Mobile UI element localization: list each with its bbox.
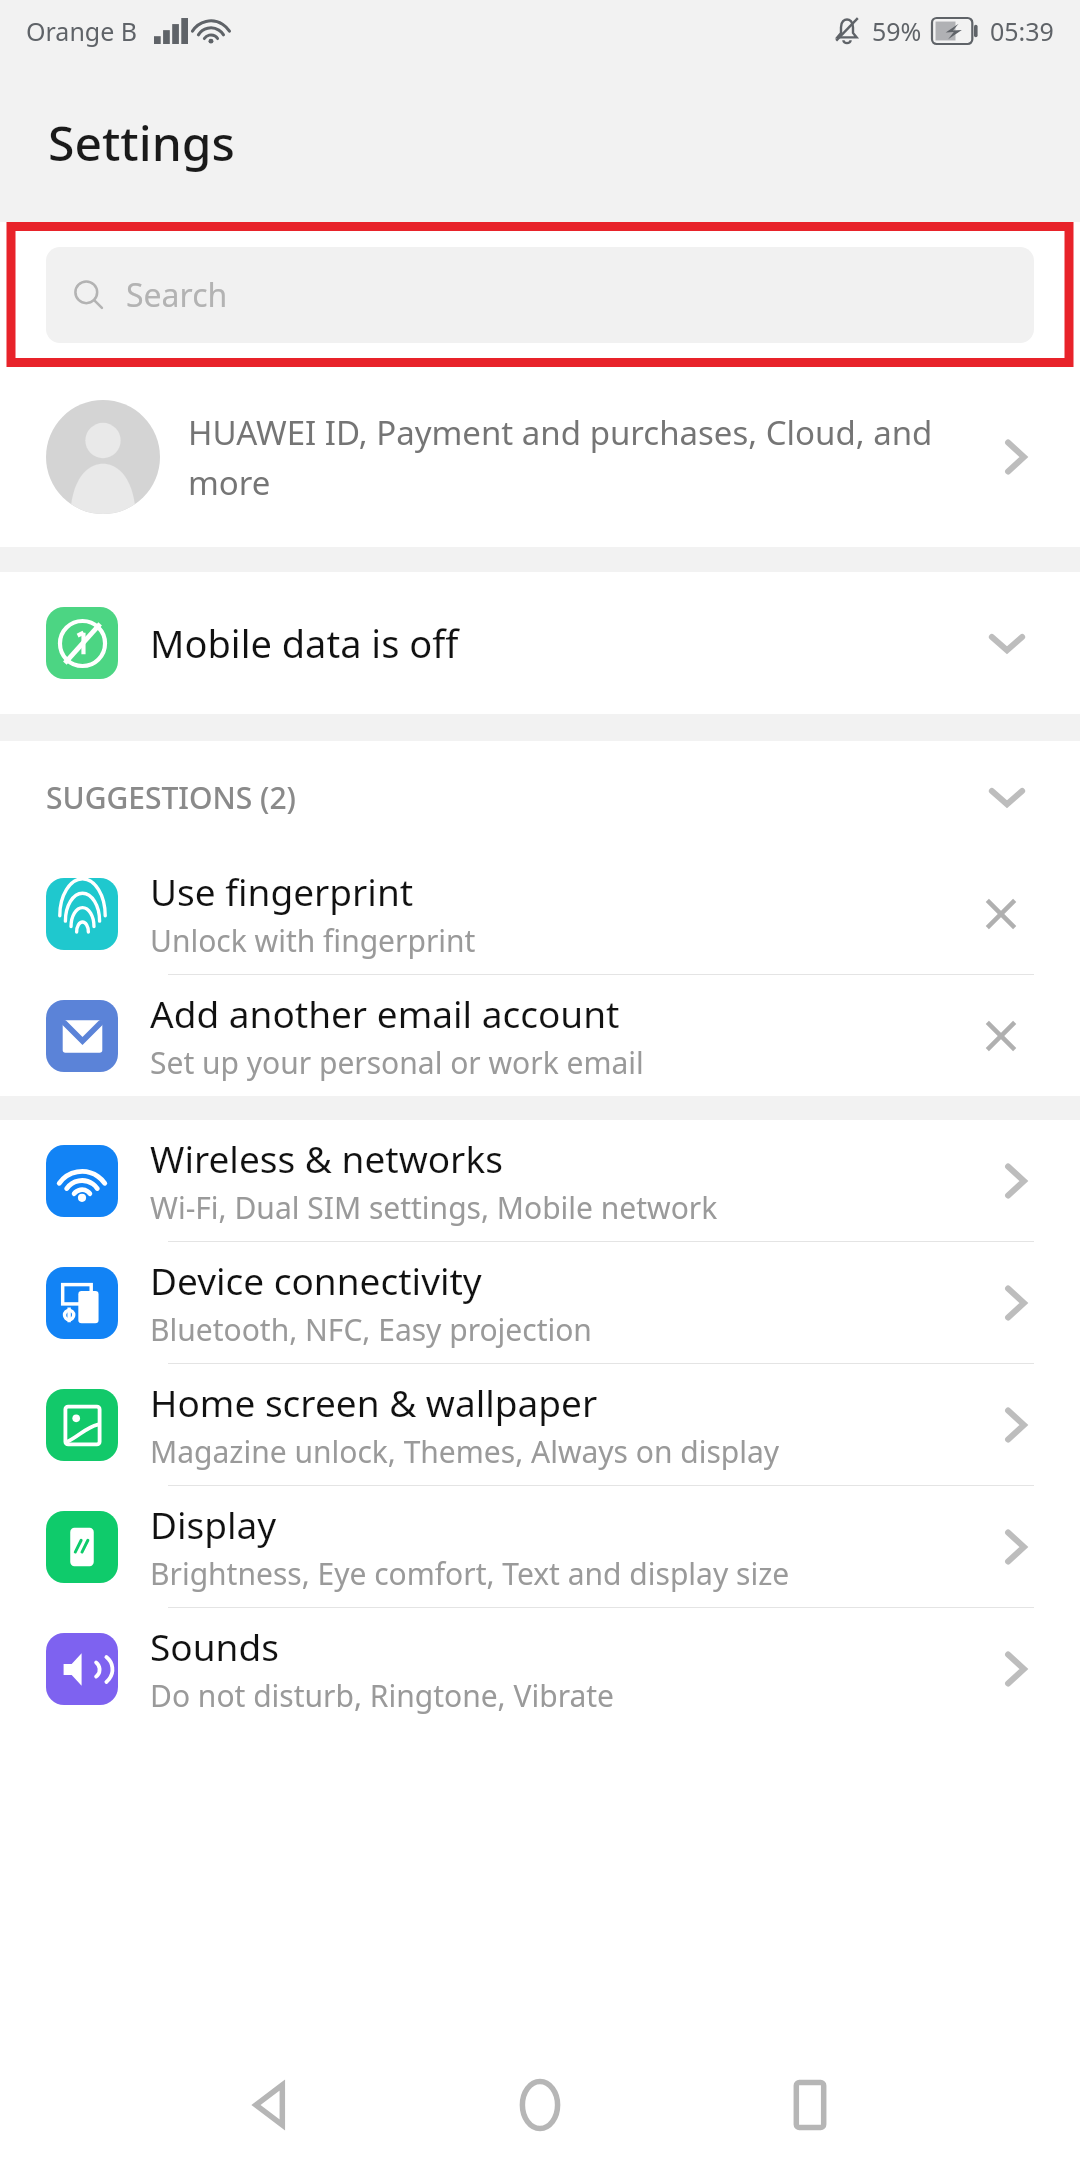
staticText: Mobile data is off: [150, 617, 980, 669]
staticText: Wi-Fi, Dual SIM settings, Mobile network: [150, 1187, 718, 1228]
button[interactable]: Use fingerprint: [0, 853, 1080, 974]
staticText: HUAWEI ID, Payment and purchases, Cloud,…: [188, 410, 984, 505]
staticText: Bluetooth, NFC, Easy projection: [150, 1309, 592, 1350]
button[interactable]: Add another email account: [0, 975, 1080, 1096]
button[interactable]: Home screen & wallpaper: [0, 1364, 1080, 1485]
staticText: Sounds: [150, 1621, 279, 1671]
button[interactable]: Back: [135, 2050, 405, 2160]
staticText: Wireless & networks: [150, 1133, 503, 1183]
staticText: Set up your personal or work email: [150, 1042, 644, 1083]
staticText: Brightness, Eye comfort, Text and displa…: [150, 1553, 790, 1594]
staticText: Home screen & wallpaper: [150, 1377, 598, 1427]
staticText: Display: [150, 1499, 277, 1549]
staticText: Orange B: [26, 14, 138, 48]
staticText: 59%: [872, 14, 922, 48]
button[interactable]: Dismiss: [968, 1003, 1034, 1069]
button[interactable]: HUAWEI ID, Payment and purchases, Cloud,…: [0, 367, 1080, 547]
button[interactable]: Display: [0, 1486, 1080, 1607]
staticText: Device connectivity: [150, 1255, 482, 1305]
staticText: Search: [126, 273, 228, 317]
button[interactable]: Wireless & networks: [0, 1120, 1080, 1241]
staticText: Settings: [48, 110, 235, 175]
button[interactable]: Mobile data is off: [0, 572, 1080, 714]
button[interactable]: Dismiss: [968, 881, 1034, 947]
button[interactable]: SUGGESTIONS (2): [0, 741, 1080, 853]
button[interactable]: Home: [405, 2050, 675, 2160]
button[interactable]: Device connectivity: [0, 1242, 1080, 1363]
button[interactable]: Search: [46, 247, 1034, 343]
staticText: Do not disturb, Ringtone, Vibrate: [150, 1675, 615, 1716]
staticText: Use fingerprint: [150, 866, 414, 916]
button[interactable]: Sounds: [0, 1608, 1080, 1729]
staticText: Add another email account: [150, 988, 620, 1038]
button[interactable]: Recent apps: [675, 2050, 945, 2160]
staticText: Magazine unlock, Themes, Always on displ…: [150, 1431, 780, 1472]
staticText: Unlock with fingerprint: [150, 920, 476, 961]
staticText: 05:39: [990, 14, 1054, 48]
staticText: SUGGESTIONS (2): [46, 777, 980, 818]
